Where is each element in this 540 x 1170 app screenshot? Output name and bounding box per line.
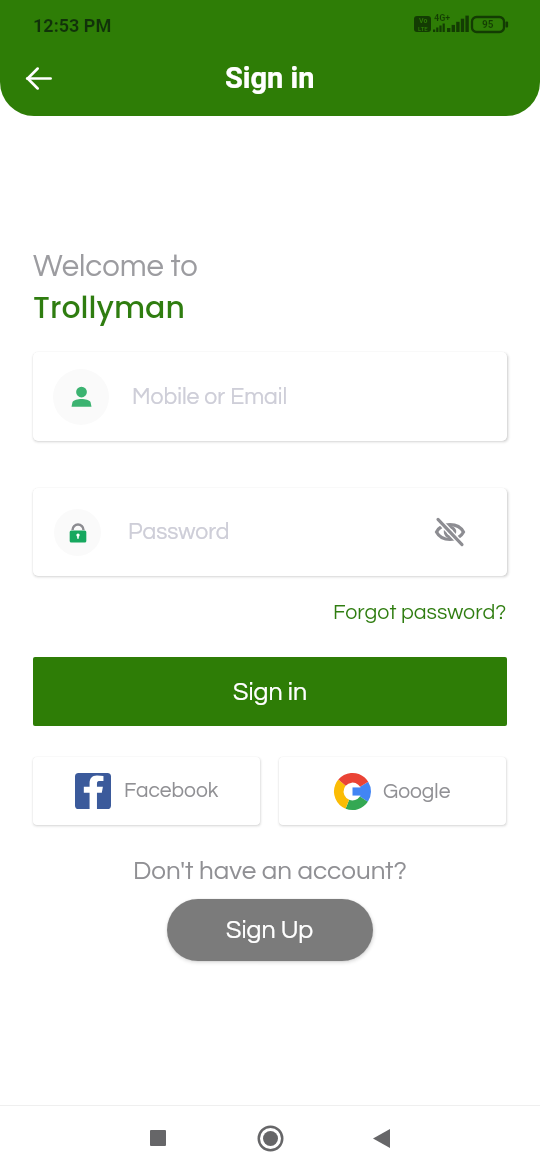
- staticText: Trollyman: [33, 287, 185, 329]
- staticText: Sign in: [233, 679, 308, 705]
- button[interactable]: Facebook: [33, 757, 260, 825]
- button[interactable]: Mobile or Email: [33, 352, 507, 441]
- button[interactable]: Password: [33, 488, 507, 576]
- button[interactable]: Recent apps: [103, 1110, 213, 1166]
- staticText: Google: [383, 781, 451, 803]
- staticText: Password: [128, 520, 230, 544]
- staticText: 12:53 PM: [33, 15, 112, 36]
- staticText: Vo: [419, 17, 428, 25]
- staticText: Forgot password?: [333, 601, 507, 623]
- button[interactable]: Google: [279, 757, 506, 825]
- staticText: LTE: [418, 25, 428, 32]
- button[interactable]: Back: [326, 1110, 436, 1166]
- button[interactable]: Sign Up: [167, 899, 373, 961]
- button[interactable]: Forgot password?: [327, 594, 512, 630]
- button[interactable]: Back: [16, 56, 60, 100]
- staticText: Don't have an account?: [133, 858, 407, 885]
- staticText: Facebook: [124, 780, 219, 802]
- button[interactable]: Sign in: [33, 657, 507, 726]
- staticText: Sign in: [225, 61, 315, 95]
- button[interactable]: Show password: [427, 509, 473, 555]
- staticText: Sign Up: [226, 917, 314, 943]
- button[interactable]: Home: [215, 1110, 325, 1166]
- staticText: 4G+: [434, 13, 451, 24]
- staticText: Mobile or Email: [132, 385, 288, 409]
- staticText: 95: [482, 19, 494, 31]
- staticText: Welcome to: [33, 251, 198, 283]
